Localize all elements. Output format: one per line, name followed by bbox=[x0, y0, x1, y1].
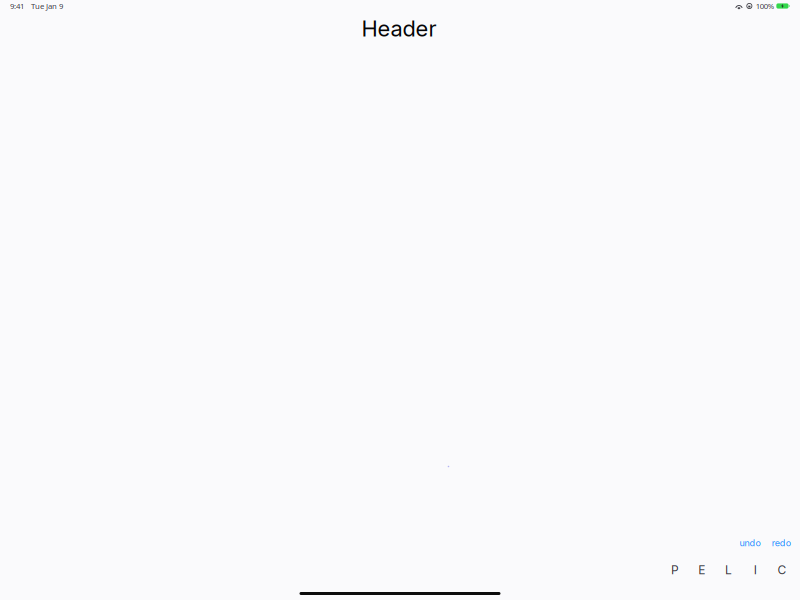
staticText: C bbox=[777, 563, 786, 577]
staticText: P bbox=[671, 563, 679, 577]
button[interactable]: I bbox=[742, 560, 769, 580]
button[interactable]: L bbox=[715, 560, 742, 580]
staticText: redo bbox=[772, 537, 791, 548]
button[interactable]: E bbox=[688, 560, 715, 580]
button[interactable]: undo bbox=[736, 535, 763, 551]
staticText: E bbox=[698, 563, 705, 577]
staticText: undo bbox=[739, 537, 760, 548]
button[interactable]: C bbox=[768, 560, 795, 580]
staticText: I bbox=[754, 563, 757, 577]
staticText: 100% bbox=[756, 1, 774, 11]
button[interactable]: P bbox=[662, 560, 688, 580]
button[interactable]: redo bbox=[768, 535, 795, 551]
staticText: Header bbox=[361, 15, 436, 42]
staticText: 9:41 bbox=[10, 1, 24, 11]
staticText: Tue Jan 9 bbox=[31, 1, 63, 11]
staticText: L bbox=[725, 563, 732, 577]
